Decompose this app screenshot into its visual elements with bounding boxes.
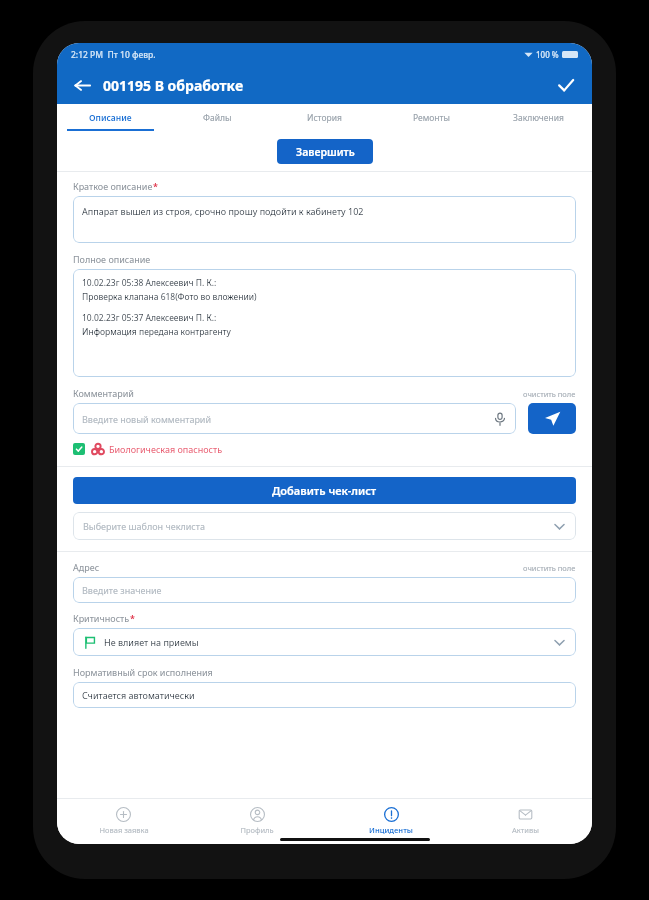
staticText: Комментарий [73,387,134,399]
button[interactable]: очистить поле [523,563,576,573]
staticText: Адрес [73,561,100,573]
button[interactable]: Биологическая опасность [73,443,576,455]
button[interactable]: Аппарат вышел из строя, срочно прошу под… [73,196,576,243]
button[interactable]: История [271,104,378,131]
button[interactable]: Файлы [164,104,271,131]
staticText: Проверка клапана 618(Фото во вложении) [82,291,257,303]
staticText: Введите значение [82,584,162,596]
staticText: Полное описание [73,253,151,265]
button[interactable]: Не влияет на приемы [73,628,576,656]
staticText: Описание [89,112,132,124]
staticText: 001195 В обработке [103,76,244,95]
staticText: Биологическая опасность [109,443,223,455]
button[interactable]: Введите значение [73,577,576,603]
staticText: Не влияет на приемы [104,636,199,648]
staticText: 10.02.23г 05:37 Алексеевич П. К.: [82,312,217,324]
staticText: Выберите шаблон чеклиста [83,520,205,532]
button[interactable]: Заключения [485,104,592,131]
staticText: Профиль [240,825,274,835]
staticText: История [307,112,342,124]
button[interactable]: очистить поле [523,389,576,399]
button[interactable]: Back [69,72,95,98]
staticText: Завершить [296,145,355,159]
button[interactable]: Профиль [190,798,324,844]
button[interactable]: Новая заявка [57,798,190,844]
staticText: Заключения [513,112,564,124]
button[interactable]: Voice input [488,407,512,431]
button[interactable]: Введите новый комментарий [73,403,516,434]
staticText: Активы [512,825,539,835]
button[interactable]: Выберите шаблон чеклиста [73,512,576,540]
staticText: * [153,180,158,192]
staticText: Критичность [73,612,130,624]
staticText: Информация передана контрагенту [82,326,231,338]
staticText: 100 % [536,49,559,60]
staticText: Инциденты [369,825,413,835]
staticText: Считается автоматически [82,689,195,701]
staticText: Введите новый комментарий [82,413,212,425]
staticText: * [130,612,135,624]
button[interactable]: Send [528,403,576,434]
staticText: Ремонты [413,112,450,124]
button[interactable]: Инциденты [324,798,458,844]
staticText: 10.02.23г 05:38 Алексеевич П. К.: [82,277,217,289]
staticText: Файлы [203,112,232,124]
staticText: очистить поле [523,563,576,573]
staticText: 2:12 PM Пт 10 февр. [71,49,156,61]
staticText: Аппарат вышел из строя, срочно прошу под… [82,205,364,217]
button[interactable]: Завершить [277,139,373,164]
staticText: Добавить чек-лист [272,483,377,498]
staticText: Краткое описание [73,180,153,192]
button[interactable]: Ремонты [378,104,485,131]
button[interactable]: 10.02.23г 05:38 Алексеевич П. К.: [73,269,576,377]
staticText: Нормативный срок исполнения [73,666,213,678]
staticText: Новая заявка [99,825,149,835]
button[interactable]: Описание [57,104,164,131]
staticText: очистить поле [523,389,576,399]
button[interactable]: Save [552,71,580,99]
button[interactable]: Считается автоматически [73,682,576,708]
button[interactable]: Активы [458,798,592,844]
button[interactable]: Добавить чек-лист [73,477,576,504]
